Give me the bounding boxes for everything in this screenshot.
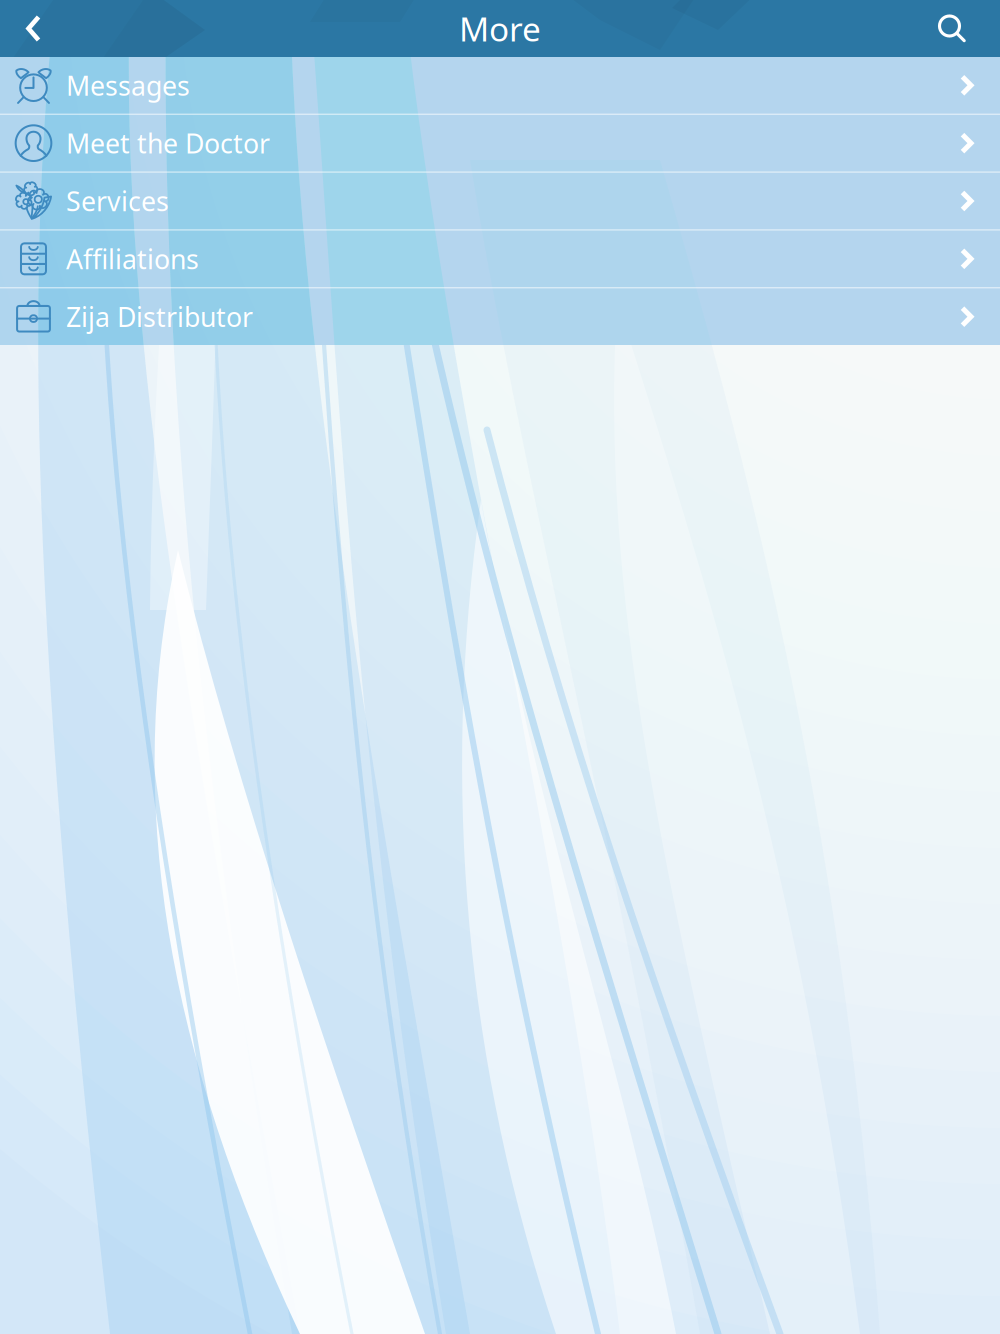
button[interactable]: Back	[0, 0, 63, 57]
staticText: Affiliations	[66, 241, 199, 276]
staticText: Meet the Doctor	[66, 125, 270, 161]
staticText: Messages	[66, 68, 190, 103]
button[interactable]: Meet the Doctor	[0, 115, 1000, 171]
button[interactable]: Services	[0, 173, 1000, 229]
staticText: More	[459, 6, 541, 51]
staticText: Zija Distributor	[66, 299, 253, 334]
button[interactable]: Search	[916, 0, 1000, 57]
staticText: Services	[66, 183, 169, 219]
button[interactable]: Affiliations	[0, 230, 1000, 287]
button[interactable]: Zija Distributor	[0, 288, 1000, 345]
button[interactable]: Messages	[0, 57, 1000, 114]
